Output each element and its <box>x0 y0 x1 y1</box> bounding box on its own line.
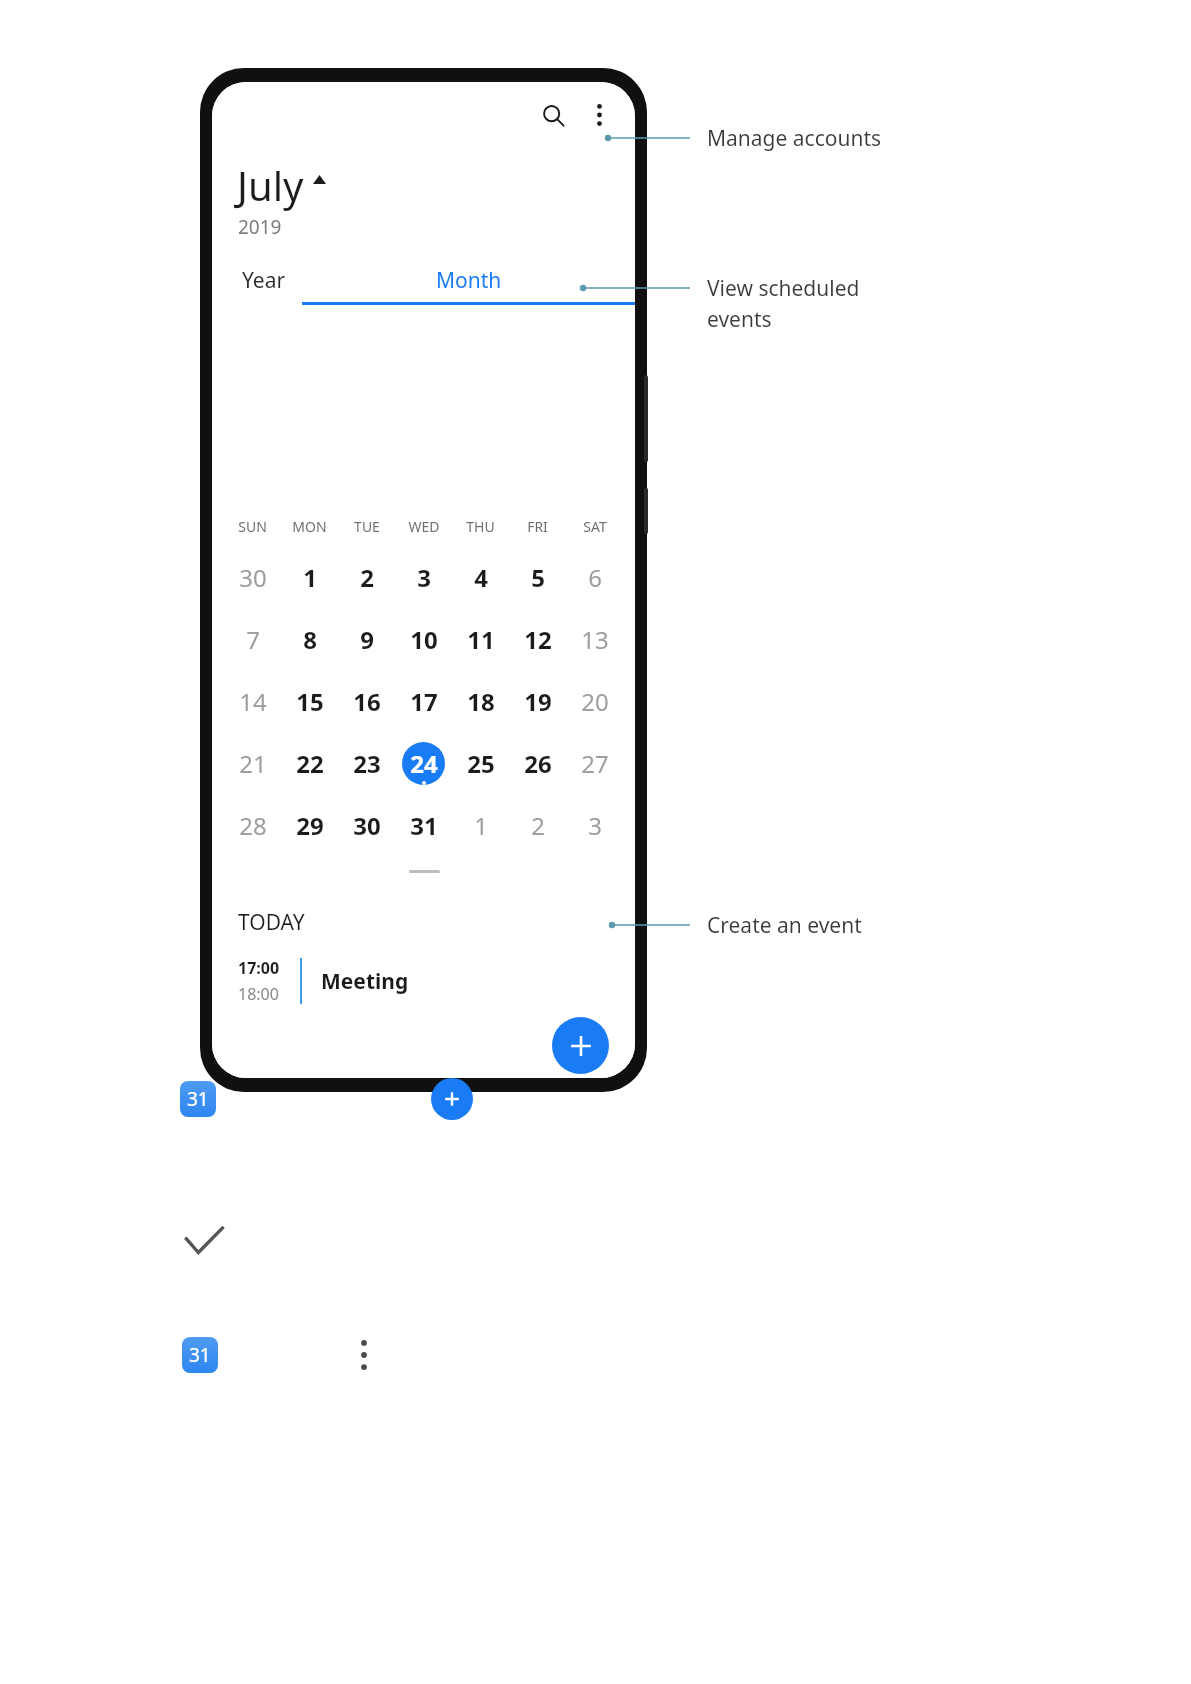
staticText: 28 <box>239 809 267 842</box>
staticText: 31 <box>189 1342 211 1368</box>
staticText: 22 <box>296 747 324 780</box>
staticText: 20 <box>581 685 609 718</box>
button[interactable]: 4 <box>452 546 509 608</box>
staticText: 25 <box>467 747 495 780</box>
staticText: Manage accounts <box>707 124 882 153</box>
button[interactable]: July <box>237 158 332 212</box>
button[interactable]: 21 <box>224 732 281 794</box>
button[interactable]: 17 <box>395 670 452 732</box>
staticText: 7 <box>246 623 260 656</box>
staticText: Month <box>436 266 502 295</box>
button[interactable]: 2 <box>338 546 395 608</box>
staticText: 26 <box>524 747 552 780</box>
button[interactable]: 15 <box>281 670 338 732</box>
staticText: TODAY <box>238 908 305 937</box>
button[interactable]: 30 <box>224 546 281 608</box>
button[interactable]: 3 <box>395 546 452 608</box>
button[interactable]: 29 <box>281 794 338 856</box>
staticText: SUN <box>238 517 267 536</box>
button[interactable]: 12 <box>509 608 566 670</box>
button[interactable]: 9 <box>338 608 395 670</box>
staticText: 18:00 <box>238 983 279 1005</box>
staticText: 23 <box>353 747 381 780</box>
staticText: 31 <box>410 809 438 842</box>
staticText: 19 <box>524 685 552 718</box>
button[interactable]: 7 <box>224 608 281 670</box>
button[interactable]: 28 <box>224 794 281 856</box>
staticText: 3 <box>588 809 602 842</box>
button[interactable]: 26 <box>509 732 566 794</box>
button[interactable]: 17:00 <box>238 957 615 1005</box>
staticText: 9 <box>360 623 374 656</box>
staticText: 24 <box>410 747 438 780</box>
button[interactable]: 5 <box>509 546 566 608</box>
staticText: TUE <box>354 517 380 536</box>
staticText: 21 <box>239 747 267 780</box>
button[interactable]: 23 <box>338 732 395 794</box>
staticText: 6 <box>588 561 602 594</box>
button[interactable]: 16 <box>338 670 395 732</box>
staticText: 2 <box>531 809 545 842</box>
staticText: 11 <box>467 623 495 656</box>
button[interactable]: 31 <box>395 794 452 856</box>
button[interactable]: 1 <box>281 546 338 608</box>
button[interactable]: 10 <box>395 608 452 670</box>
staticText: 8 <box>303 623 317 656</box>
button[interactable]: 8 <box>281 608 338 670</box>
staticText: 31 <box>187 1086 209 1112</box>
staticText: WED <box>408 517 440 536</box>
staticText: THU <box>466 517 495 536</box>
staticText: 5 <box>531 561 545 594</box>
staticText: 30 <box>239 561 267 594</box>
staticText: 15 <box>296 685 324 718</box>
staticText: Create an event <box>707 911 862 940</box>
staticText: MON <box>292 517 327 536</box>
button[interactable]: Search <box>529 91 577 139</box>
staticText: 16 <box>353 685 381 718</box>
button[interactable]: Manage accounts <box>577 93 621 137</box>
button[interactable]: 6 <box>566 546 623 608</box>
staticText: SAT <box>583 517 607 536</box>
button[interactable]: 18 <box>452 670 509 732</box>
button[interactable]: Month <box>302 266 635 305</box>
button[interactable]: Year <box>242 266 286 302</box>
button[interactable]: 13 <box>566 608 623 670</box>
staticText: 17:00 <box>238 957 280 979</box>
staticText: 13 <box>581 623 609 656</box>
staticText: 18 <box>467 685 495 718</box>
button[interactable]: 19 <box>509 670 566 732</box>
staticText: Meeting <box>321 967 409 996</box>
button[interactable]: 1 <box>452 794 509 856</box>
staticText: July <box>237 158 304 212</box>
button[interactable]: 27 <box>566 732 623 794</box>
staticText: 2 <box>360 561 374 594</box>
button[interactable]: 25 <box>452 732 509 794</box>
button[interactable]: 30 <box>338 794 395 856</box>
button[interactable]: Calendar <box>180 1081 216 1117</box>
other: Done <box>184 1226 224 1260</box>
staticText: 3 <box>417 561 431 594</box>
staticText: 1 <box>474 809 488 842</box>
staticText: 12 <box>524 623 552 656</box>
staticText: 2019 <box>238 214 282 240</box>
staticText: 30 <box>353 809 381 842</box>
staticText: 17 <box>410 685 438 718</box>
button[interactable]: 14 <box>224 670 281 732</box>
button[interactable]: 22 <box>281 732 338 794</box>
staticText: View scheduled events <box>707 274 860 333</box>
button[interactable]: Calendar <box>182 1337 218 1373</box>
staticText: 1 <box>303 561 317 594</box>
button[interactable]: 3 <box>566 794 623 856</box>
button[interactable]: 20 <box>566 670 623 732</box>
button[interactable]: More options <box>352 1332 376 1378</box>
staticText: 4 <box>474 561 488 594</box>
staticText: FRI <box>527 517 548 536</box>
button[interactable]: Create an event <box>552 1017 609 1074</box>
staticText: 14 <box>239 685 267 718</box>
staticText: 29 <box>296 809 324 842</box>
button[interactable]: 2 <box>509 794 566 856</box>
button[interactable]: 24 <box>395 732 452 794</box>
staticText: 10 <box>410 623 438 656</box>
button[interactable]: Create an event <box>431 1078 473 1120</box>
button[interactable]: 11 <box>452 608 509 670</box>
